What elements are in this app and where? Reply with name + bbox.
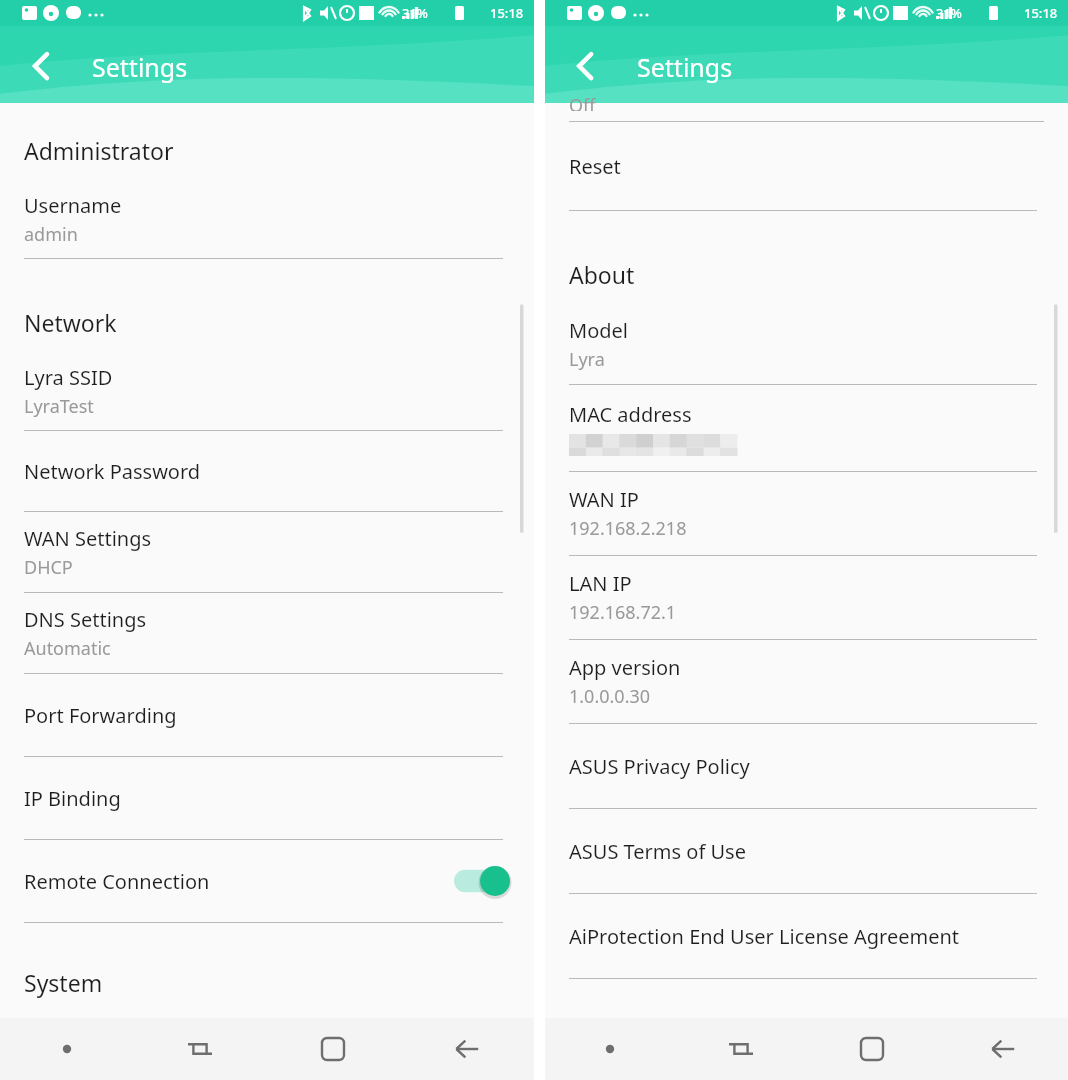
button[interactable]: App version [545,640,1068,724]
button[interactable]: Remote Connection toggle [454,864,510,898]
button[interactable]: Username [0,180,534,259]
button[interactable]: Back [10,39,66,95]
button[interactable]: ASUS Privacy Policy [545,724,1068,809]
staticText: LAN IP [569,570,632,597]
staticText: Network Password [24,458,201,485]
staticText: IP Binding [24,785,121,812]
staticText: WAN IP [569,486,639,513]
staticText: Automatic [24,636,111,661]
staticText: 192.168.72.1 [569,600,677,625]
staticText: admin [24,222,78,247]
button[interactable]: AiProtection End User License Agreement [545,894,1068,979]
button[interactable]: Menu [545,1018,675,1080]
staticText: Network [24,307,117,338]
staticText: 192.168.2.218 [569,516,687,541]
button[interactable]: WAN Settings [0,512,534,593]
button[interactable]: Back [400,1018,534,1080]
staticText: WAN Settings [24,525,152,552]
staticText: About [569,259,635,290]
staticText: DNS Settings [24,606,147,633]
staticText: ASUS Privacy Policy [569,753,750,780]
button[interactable]: Back [937,1018,1068,1080]
button[interactable]: WAN IP [545,472,1068,556]
staticText: AiProtection End User License Agreement [569,923,960,950]
staticText: Reset [569,153,621,180]
staticText: 15:18 [1024,4,1058,22]
button[interactable]: DNS Settings [0,593,534,674]
staticText: ASUS Terms of Use [569,838,746,865]
staticText: Lyra [569,347,605,372]
staticText: MAC address [569,401,692,428]
staticText: 15:18 [490,4,524,22]
button[interactable]: Home [266,1018,400,1080]
staticText: App version [569,654,681,681]
staticText: Settings [92,50,188,84]
staticText: Settings [637,50,733,84]
button[interactable]: Port Forwarding [0,674,534,757]
staticText: System [24,967,103,998]
button[interactable]: Reset [545,122,1068,211]
button[interactable]: Remote Connection [0,840,534,923]
button[interactable]: Network Password [0,431,534,512]
button[interactable]: IP Binding [0,757,534,840]
button[interactable]: Menu [0,1018,133,1080]
staticText: 31% [402,4,428,22]
button[interactable]: Recents [675,1018,806,1080]
staticText: LyraTest [24,394,94,419]
staticText: DHCP [24,555,73,580]
button[interactable]: Off [545,103,1068,122]
button[interactable]: Lyra SSID [0,352,534,431]
button[interactable]: Recents [133,1018,266,1080]
staticText: Username [24,192,122,219]
staticText: Remote Connection [24,868,210,895]
button[interactable]: MAC address [545,385,1068,472]
staticText: 1.0.0.0.30 [569,684,651,709]
button[interactable]: ASUS Terms of Use [545,809,1068,894]
staticText: 31% [936,4,962,22]
staticText: Administrator [24,135,174,166]
staticText: Lyra SSID [24,364,113,391]
button[interactable]: LAN IP [545,556,1068,640]
button[interactable]: Model [545,304,1068,385]
button[interactable]: Back [555,39,611,95]
staticText: Model [569,317,628,344]
staticText: Port Forwarding [24,702,177,729]
staticText: Off [569,93,596,111]
button[interactable]: Home [806,1018,937,1080]
